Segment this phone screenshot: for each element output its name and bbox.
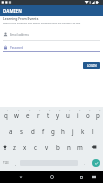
button[interactable]: l	[88, 123, 98, 139]
staticText: g	[51, 127, 55, 135]
staticText: v	[45, 143, 49, 151]
staticText: n	[67, 143, 71, 151]
button[interactable]: v	[41, 139, 52, 155]
button[interactable]: d	[27, 123, 38, 139]
staticText: l	[92, 127, 94, 135]
staticText: j	[72, 127, 74, 135]
staticText: DAMIEN	[3, 8, 22, 14]
staticText: t	[47, 111, 50, 119]
staticText: s	[20, 127, 23, 135]
staticText: w	[14, 111, 19, 119]
staticText: 9	[89, 109, 91, 112]
staticText: c	[34, 143, 37, 151]
staticText: a	[9, 127, 13, 135]
button[interactable]: Home	[47, 172, 57, 182]
button[interactable]: ,	[11, 155, 19, 171]
button[interactable]: j	[68, 123, 78, 139]
staticText: e	[26, 111, 30, 119]
button[interactable]: r	[33, 107, 43, 123]
button[interactable]: w	[11, 107, 22, 123]
staticText: m	[77, 143, 83, 151]
button[interactable]: x	[19, 139, 30, 155]
staticText: 8	[79, 109, 81, 112]
button[interactable]: o	[83, 107, 93, 123]
staticText: y	[56, 111, 60, 119]
button[interactable]: s	[16, 123, 27, 139]
staticText: k	[81, 127, 85, 135]
staticText: .	[84, 161, 85, 166]
button[interactable]: q	[0, 107, 11, 123]
staticText: ,	[15, 161, 16, 166]
staticText: LOGIN	[87, 64, 97, 68]
staticText: ?123	[3, 161, 9, 165]
staticText: h	[61, 127, 65, 135]
staticText: z	[13, 143, 16, 151]
button[interactable]: Shift	[0, 139, 9, 155]
button[interactable]: t	[43, 107, 53, 123]
button[interactable]: ?123	[0, 155, 11, 171]
button[interactable]: y	[53, 107, 63, 123]
button[interactable]: Backspace	[85, 139, 103, 155]
staticText: 6	[59, 109, 61, 112]
staticText: 2	[18, 109, 20, 112]
staticText: x	[23, 143, 27, 151]
button[interactable]: f	[38, 123, 48, 139]
staticText: 3	[29, 109, 31, 112]
staticText: q	[4, 111, 8, 119]
staticText: o	[86, 111, 90, 119]
staticText: 4	[39, 109, 41, 112]
button[interactable]: Enter	[92, 159, 100, 167]
button[interactable]: Back	[16, 172, 26, 182]
button[interactable]: Recents	[76, 172, 86, 182]
other: Backspace	[91, 144, 97, 150]
button[interactable]: b	[52, 139, 63, 155]
staticText: r	[37, 111, 40, 119]
staticText: d	[31, 127, 35, 135]
staticText: f	[42, 127, 45, 135]
staticText: Email address	[10, 33, 29, 37]
staticText: p	[96, 111, 100, 119]
other: Shift	[2, 144, 8, 150]
staticText: Report your incidents and events anywher…	[3, 21, 81, 24]
button[interactable]: n	[63, 139, 74, 155]
button[interactable]: i	[73, 107, 83, 123]
button[interactable]: p	[93, 107, 103, 123]
button[interactable]: Switch keyboard	[90, 173, 98, 181]
staticText: i	[77, 111, 79, 119]
button[interactable]: z	[9, 139, 19, 155]
staticText: u	[66, 111, 70, 119]
staticText: 0	[99, 109, 101, 112]
staticText: Password	[10, 46, 24, 50]
button[interactable]: e	[22, 107, 33, 123]
staticText: b	[56, 143, 60, 151]
button[interactable]: m	[74, 139, 85, 155]
button[interactable]: LOGIN	[83, 62, 100, 69]
staticText: 1	[7, 109, 9, 112]
staticText: 5	[49, 109, 51, 112]
button[interactable]: g	[48, 123, 58, 139]
button[interactable]: u	[63, 107, 73, 123]
button[interactable]: c	[30, 139, 41, 155]
button[interactable]: k	[78, 123, 88, 139]
staticText: Learning From Events	[3, 16, 39, 21]
button[interactable]: a	[5, 123, 16, 139]
button[interactable]: h	[58, 123, 68, 139]
staticText: 7	[69, 109, 71, 112]
